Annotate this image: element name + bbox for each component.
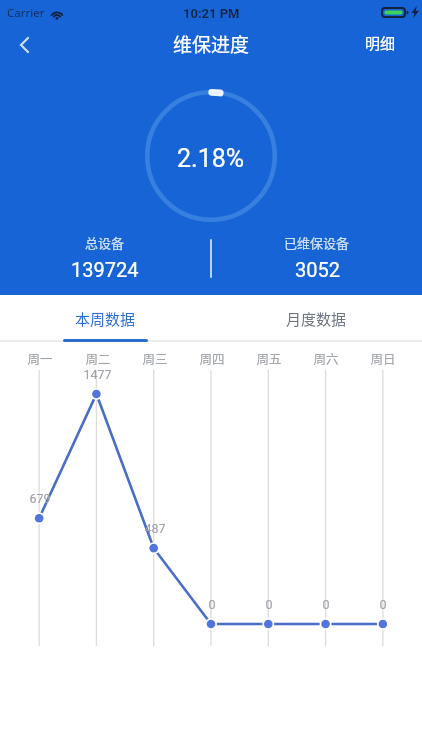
staticText: 本周数据 [75, 308, 136, 330]
staticText: 0 [208, 597, 216, 612]
staticText: 周二 [85, 349, 111, 367]
staticText: 10:21 PM [183, 6, 240, 21]
button[interactable]: 本周数据 [0, 295, 211, 342]
staticText: Carrier [7, 5, 45, 21]
staticText: 周一 [27, 349, 53, 367]
staticText: 维保进度 [173, 30, 250, 58]
button[interactable]: Back [2, 26, 46, 64]
staticText: 2.18% [177, 144, 245, 173]
staticText: 明细 [365, 32, 396, 54]
staticText: 周六 [313, 349, 339, 367]
staticText: 3052 [295, 258, 340, 281]
staticText: 0 [265, 597, 273, 612]
staticText: 487 [144, 521, 166, 536]
staticText: 0 [379, 597, 387, 612]
staticText: 0 [322, 597, 330, 612]
staticText: 周三 [142, 349, 168, 367]
button[interactable]: 月度数据 [211, 295, 422, 342]
staticText: 总设备 [85, 233, 125, 252]
staticText: 139724 [71, 258, 139, 281]
staticText: 周四 [199, 349, 225, 367]
staticText: 月度数据 [286, 308, 347, 330]
button[interactable]: 明细 [351, 26, 422, 64]
staticText: 已维保设备 [284, 233, 350, 252]
staticText: 679 [29, 491, 51, 506]
staticText: 周五 [256, 349, 282, 367]
staticText: 周日 [370, 349, 396, 367]
staticText: 1477 [83, 367, 112, 382]
